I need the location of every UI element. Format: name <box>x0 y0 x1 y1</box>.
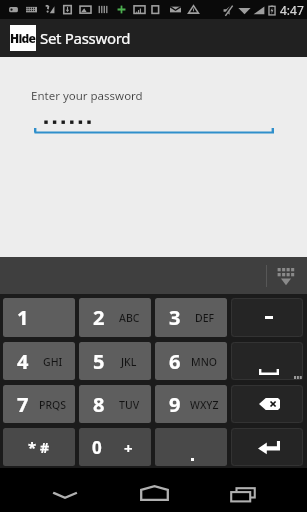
staticText: TUV <box>119 398 140 412</box>
button[interactable]: 8 <box>79 385 151 423</box>
staticText: MNO <box>191 355 218 369</box>
staticText: PRQS <box>39 398 67 412</box>
button[interactable] <box>155 428 227 466</box>
staticText: WXYZ <box>190 398 219 412</box>
button[interactable]: 6 <box>155 342 227 380</box>
staticText: * <box>28 437 37 457</box>
staticText: Hide <box>10 30 36 46</box>
staticText: + <box>124 438 133 458</box>
button[interactable]: Backspace <box>231 385 303 423</box>
button[interactable]: Home <box>120 474 188 512</box>
staticText: # <box>40 438 50 457</box>
staticText: 0 <box>92 436 102 459</box>
button[interactable]: 0 <box>79 428 151 466</box>
button[interactable]: Hide keyboard <box>271 261 301 291</box>
button[interactable]: Recent apps <box>208 475 276 512</box>
staticText: 3 <box>169 304 181 331</box>
button[interactable]: 1 <box>3 298 75 337</box>
staticText: JKL <box>121 355 137 369</box>
staticText: ABC <box>119 311 140 325</box>
button[interactable]: * <box>3 428 75 466</box>
staticText: 1 <box>17 304 29 331</box>
button[interactable]: App icon <box>10 25 36 51</box>
staticText: 7 <box>17 391 29 418</box>
staticText: Enter your password <box>31 88 143 104</box>
staticText: DEF <box>195 311 215 325</box>
button[interactable]: 5 <box>79 342 151 380</box>
button[interactable]: Enter <box>231 428 303 466</box>
staticText: Set Password <box>40 28 131 48</box>
staticText: GHI <box>43 355 63 369</box>
button[interactable]: 9 <box>155 385 227 423</box>
button[interactable]: Hide keyboard <box>31 477 99 512</box>
staticText: 6 <box>169 348 181 375</box>
button[interactable]: Dash <box>231 298 303 337</box>
button[interactable]: 3 <box>155 298 227 337</box>
staticText: 8 <box>93 391 105 418</box>
button[interactable]: 7 <box>3 385 75 423</box>
button[interactable]: Space <box>231 342 303 380</box>
button[interactable]: 2 <box>79 298 151 337</box>
staticText: 5 <box>93 348 105 375</box>
staticText: 4 <box>17 348 29 375</box>
staticText: 4:47 <box>280 2 304 18</box>
staticText: 9 <box>169 391 181 418</box>
button[interactable]: 4 <box>3 342 75 380</box>
staticText: 2 <box>93 304 105 331</box>
